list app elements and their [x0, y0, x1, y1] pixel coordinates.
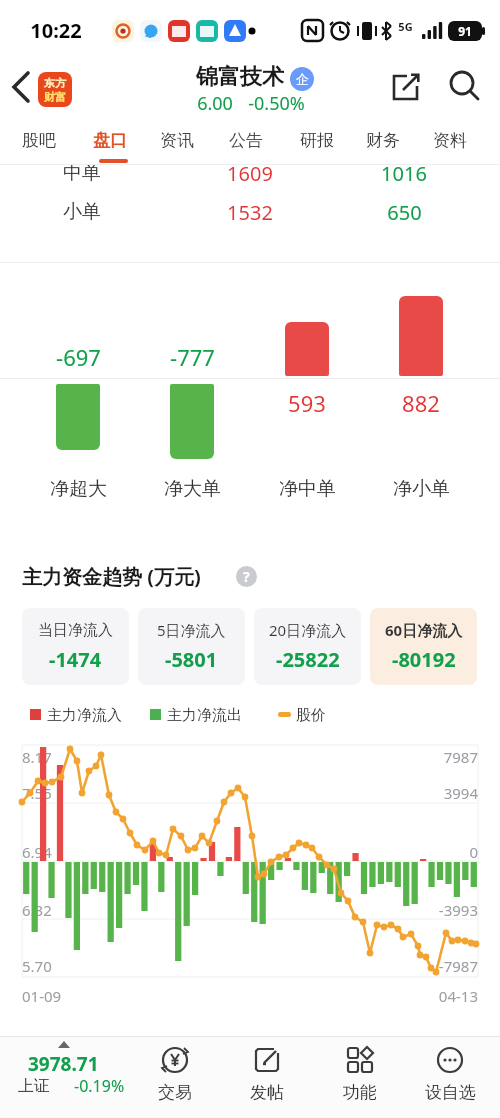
staticText: -3993: [278, 900, 478, 920]
staticText: 7.55: [22, 783, 52, 803]
staticText: ?: [243, 567, 250, 586]
staticText: 中单: [63, 165, 101, 185]
staticText: 593: [288, 388, 326, 418]
staticText: 净大单: [164, 477, 221, 501]
button[interactable]: 功能: [322, 1038, 398, 1116]
staticText: 上证: [18, 1076, 50, 1096]
staticText: 60日净流入: [385, 620, 463, 640]
staticText: 财务: [366, 130, 400, 151]
staticText: 净中单: [279, 477, 336, 501]
staticText: 主力资金趋势 (万元): [22, 563, 201, 590]
staticText: 主力净流入: [47, 706, 122, 725]
button[interactable]: [6, 65, 38, 110]
staticText: 5G: [398, 19, 413, 34]
staticText: 净小单: [393, 477, 450, 501]
staticText: 20日净流入: [269, 620, 347, 640]
staticText: 1016: [381, 165, 427, 187]
button[interactable]: 资讯: [143, 120, 211, 160]
staticText: 8.17: [22, 747, 52, 767]
staticText: 01-09: [22, 986, 62, 1006]
staticText: 股吧: [22, 130, 56, 151]
staticText: 5日净流入: [157, 620, 226, 640]
staticText: 3994: [278, 783, 478, 803]
button[interactable]: 公告: [212, 120, 280, 160]
button[interactable]: [446, 68, 484, 106]
button[interactable]: 资料: [416, 120, 484, 160]
button[interactable]: 3978.71: [6, 1038, 136, 1116]
staticText: 1609: [227, 165, 273, 187]
staticText: 公告: [229, 130, 263, 151]
staticText: 股价: [296, 706, 326, 725]
button[interactable]: 当日净流入: [22, 608, 129, 685]
staticText: 882: [402, 388, 440, 418]
button[interactable]: 股吧: [5, 120, 73, 160]
staticText: 10:22: [30, 17, 82, 44]
staticText: 5.70: [22, 956, 52, 976]
staticText: 发帖: [250, 1082, 284, 1103]
staticText: 04-13: [278, 986, 478, 1006]
staticText: 功能: [343, 1082, 377, 1103]
staticText: 主力净流出: [167, 706, 242, 725]
button[interactable]: [390, 70, 424, 104]
button[interactable]: 5日净流入: [138, 608, 245, 685]
staticText: 当日净流入: [38, 621, 113, 640]
button[interactable]: 东方: [38, 72, 72, 107]
staticText: 企: [296, 71, 309, 87]
staticText: 资料: [433, 130, 467, 151]
staticText: 资讯: [160, 130, 194, 151]
staticText: 锦富技术: [196, 63, 284, 91]
staticText: 小单: [63, 200, 101, 224]
staticText: -80192: [392, 646, 456, 673]
staticText: 0: [278, 842, 478, 862]
button[interactable]: 60日净流入: [370, 608, 477, 685]
staticText: 6.00: [197, 91, 233, 116]
staticText: -25822: [276, 646, 340, 673]
button[interactable]: 发帖: [229, 1038, 305, 1116]
staticText: 3978.71: [28, 1051, 99, 1077]
staticText: 设自选: [425, 1082, 476, 1103]
staticText: 研报: [300, 130, 334, 151]
staticText: 1532: [227, 199, 273, 226]
staticText: 东方: [44, 76, 66, 90]
button[interactable]: 财务: [349, 120, 417, 160]
button[interactable]: 交易: [137, 1038, 213, 1116]
button[interactable]: 20日净流入: [254, 608, 361, 685]
staticText: 91: [458, 23, 472, 39]
button[interactable]: 研报: [283, 120, 351, 160]
staticText: 650: [387, 199, 422, 226]
staticText: -0.19%: [74, 1075, 125, 1097]
staticText: -7987: [278, 956, 478, 976]
staticText: 净超大: [50, 477, 107, 501]
staticText: -777: [170, 342, 215, 372]
button[interactable]: 盘口: [76, 120, 144, 160]
staticText: 盘口: [93, 130, 127, 151]
staticText: -1474: [49, 646, 102, 673]
staticText: 交易: [158, 1082, 192, 1103]
staticText: -5801: [165, 646, 218, 673]
staticText: 6.94: [22, 842, 52, 862]
button[interactable]: ?: [236, 566, 257, 587]
staticText: -0.50%: [248, 91, 305, 116]
staticText: -697: [56, 342, 101, 372]
staticText: 财富: [44, 90, 66, 104]
staticText: 7987: [278, 747, 478, 767]
button[interactable]: 设自选: [412, 1038, 488, 1116]
staticText: 6.32: [22, 900, 52, 920]
